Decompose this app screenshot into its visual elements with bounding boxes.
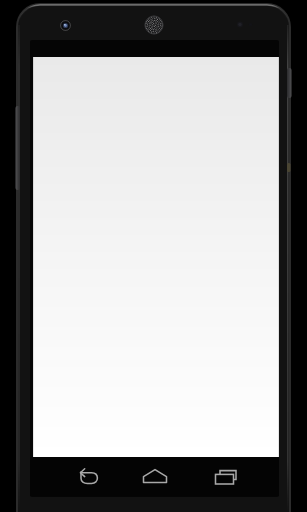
button[interactable]: Power — [285, 68, 294, 98]
button[interactable]: App content — [33, 57, 279, 457]
button[interactable]: Home — [133, 457, 177, 496]
button[interactable]: Volume — [13, 106, 22, 190]
button[interactable]: Recent apps — [203, 457, 247, 496]
button[interactable]: Back — [62, 457, 110, 496]
